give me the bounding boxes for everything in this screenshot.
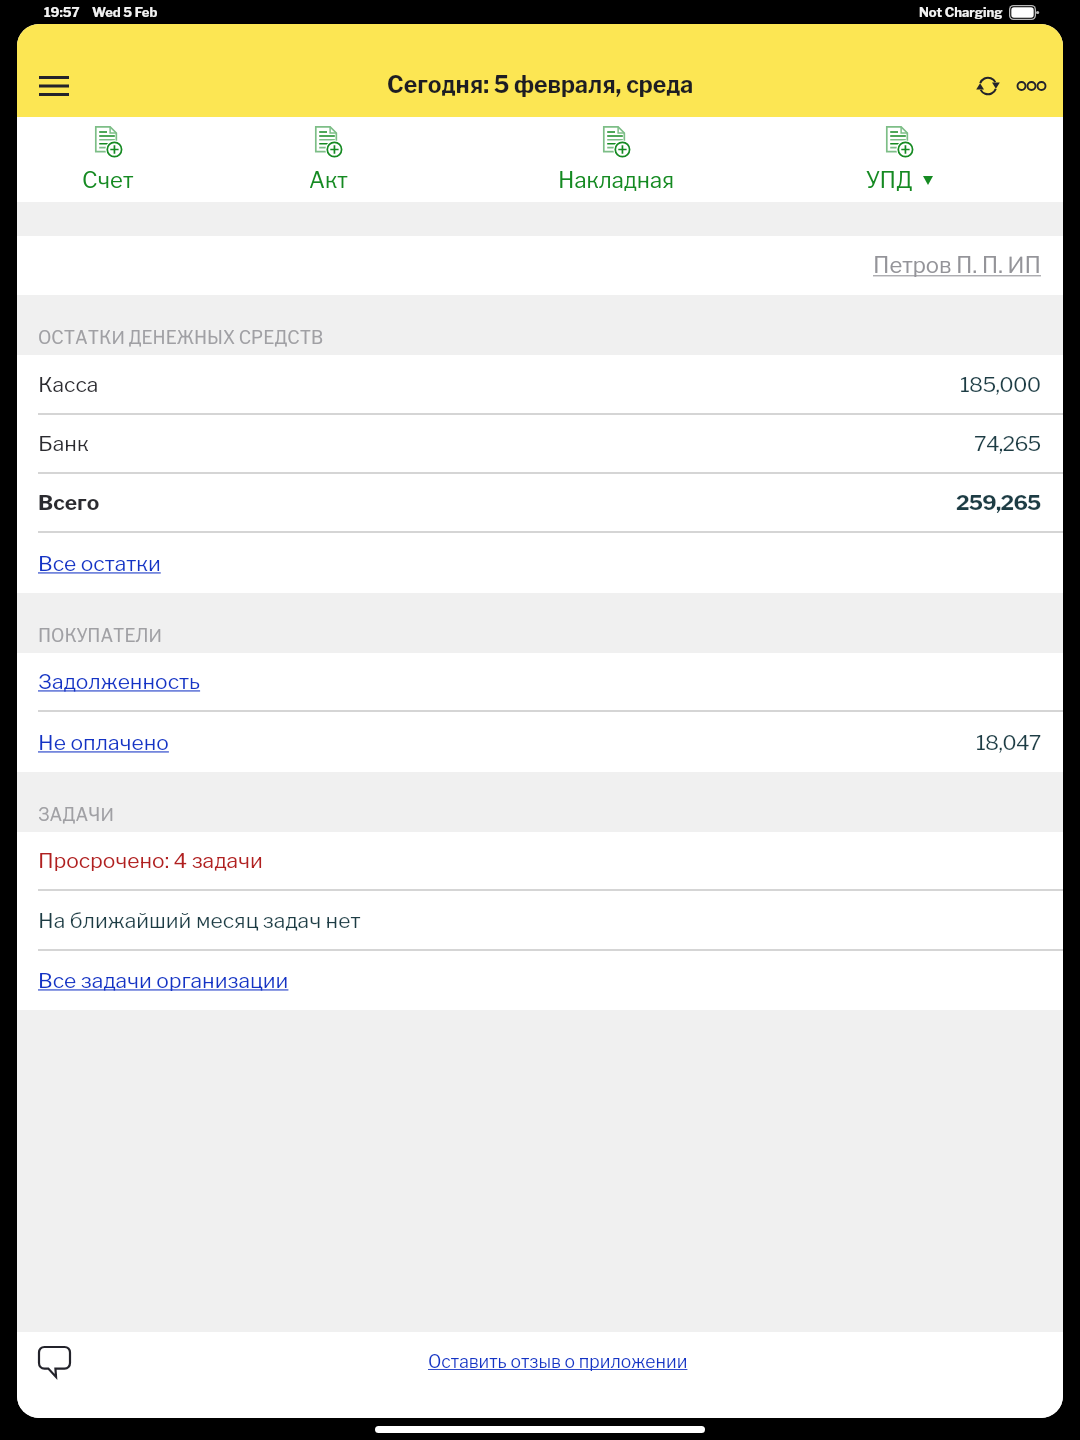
button[interactable]: Feedback — [26, 1336, 82, 1388]
staticText: Банк — [38, 431, 89, 456]
staticText: 19:57 — [44, 4, 80, 20]
staticText: Акт — [309, 167, 348, 194]
button[interactable]: На ближайший месяц задач нет — [17, 891, 1063, 949]
button[interactable]: Банк — [17, 415, 1063, 472]
button[interactable]: Open navigation menu — [25, 60, 83, 112]
button[interactable]: Акт — [223, 117, 433, 202]
button[interactable]: Refresh — [962, 60, 1014, 112]
staticText: Not Charging — [919, 4, 1003, 20]
staticText: Касса — [38, 372, 99, 397]
staticText: ОСТАТКИ ДЕНЕЖНЫХ СРЕДСТВ — [38, 327, 324, 348]
button[interactable]: УПД — [794, 117, 1004, 202]
staticText: 18,047 — [976, 730, 1041, 755]
staticText: ПОКУПАТЕЛИ — [38, 625, 162, 646]
button[interactable]: Задолженность — [17, 653, 1063, 710]
button[interactable]: Петров П. П. ИП — [17, 236, 1063, 295]
button[interactable]: Касса — [17, 355, 1063, 413]
staticText: ЗАДАЧИ — [38, 804, 114, 825]
staticText: На ближайший месяц задач нет — [38, 908, 361, 933]
button[interactable]: Всего — [17, 474, 1063, 531]
staticText: Накладная — [558, 167, 675, 194]
button[interactable]: Все остатки — [17, 533, 1063, 593]
button[interactable]: Накладная — [511, 117, 721, 202]
button[interactable]: Все задачи организации — [17, 951, 1063, 1010]
button[interactable]: Не оплачено — [17, 712, 1063, 772]
button[interactable]: Просрочено: 4 задачи — [17, 832, 1063, 889]
staticText: Оставить отзыв о приложении — [428, 1351, 688, 1372]
staticText: Все остатки — [38, 551, 161, 576]
staticText: Задолженность — [38, 669, 201, 694]
staticText: Петров П. П. ИП — [873, 252, 1041, 279]
staticText: УПД — [866, 167, 913, 194]
staticText: Wed 5 Feb — [92, 4, 158, 20]
button[interactable]: Счет — [17, 117, 213, 202]
button[interactable]: More options — [1005, 60, 1057, 112]
staticText: Не оплачено — [38, 730, 169, 755]
button[interactable]: Оставить отзыв о приложении — [418, 1345, 698, 1378]
staticText: 74,265 — [974, 431, 1041, 456]
staticText: Все задачи организации — [38, 968, 289, 993]
staticText: 185,000 — [960, 372, 1041, 397]
staticText: Просрочено: 4 задачи — [38, 848, 263, 873]
staticText: 259,265 — [956, 490, 1041, 515]
staticText: Сегодня: 5 февраля, среда — [387, 71, 694, 99]
staticText: Всего — [38, 490, 100, 515]
staticText: Счет — [82, 167, 134, 194]
